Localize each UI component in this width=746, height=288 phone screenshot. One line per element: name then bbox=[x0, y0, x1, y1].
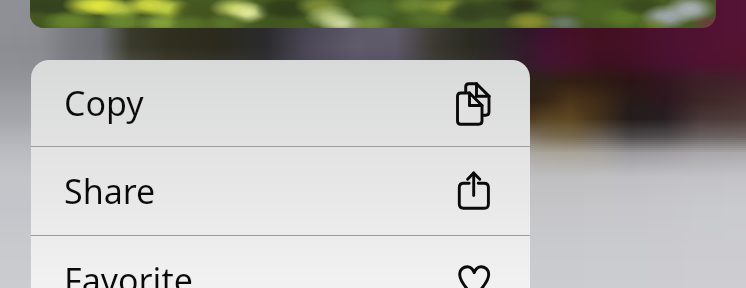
button[interactable]: Copy bbox=[31, 60, 530, 146]
button[interactable]: Share bbox=[31, 147, 530, 235]
staticText: Share bbox=[64, 168, 156, 214]
staticText: Copy bbox=[64, 80, 144, 126]
staticText: Favorite bbox=[64, 257, 193, 288]
button[interactable]: Favorite bbox=[31, 236, 530, 288]
